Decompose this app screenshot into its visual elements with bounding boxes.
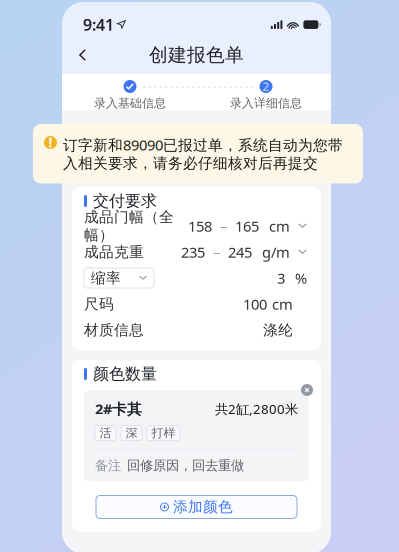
staticText: ! [48,134,52,151]
staticText: 缩率 [91,269,121,287]
staticText: 添加颜色 [173,498,233,516]
staticText: 回修原因，回去重做 [127,457,244,474]
staticText: 2#卡其 [95,399,142,418]
staticText: – [220,216,227,236]
staticText: 活 [99,426,111,440]
staticText: % [295,268,307,288]
staticText: – [213,242,220,262]
staticText: 打样 [151,426,175,440]
staticText: cm [272,294,293,314]
button[interactable]: 返回 [68,42,97,68]
staticText: 成品克重 [84,243,144,261]
button[interactable]: 删除颜色 [301,384,313,396]
staticText: 9:41 [83,14,114,35]
staticText: 录入详细信息 [230,96,302,111]
staticText: 订字新和89090已报过单，系统自动为您带入相关要求，请务必仔细核对后再提交 [63,135,343,172]
staticText: 深 [125,426,137,440]
button[interactable]: 添加颜色 [96,495,297,518]
staticText: 备注 [95,457,121,474]
staticText: 158 [188,216,212,236]
staticText: 创建报色单 [149,43,244,66]
staticText: 交付要求 [93,191,157,211]
staticText: g/m [262,242,290,262]
staticText: 165 [235,216,259,236]
staticText: 颜色数量 [93,364,157,384]
staticText: 录入基础信息 [94,96,166,111]
staticText: 共2缸,2800米 [215,400,298,418]
staticText: 成品门幅（全幅） [84,208,174,244]
staticText: 245 [228,242,252,262]
button[interactable]: 缩率 [84,268,154,288]
staticText: cm [269,216,290,236]
staticText: 尺码 [84,295,114,313]
staticText: 3 [277,268,285,288]
staticText: 材质信息 [84,321,144,339]
staticText: 100 [243,294,267,314]
staticText: 2 [262,78,269,94]
staticText: 涤纶 [263,321,293,339]
staticText: 235 [181,242,205,262]
